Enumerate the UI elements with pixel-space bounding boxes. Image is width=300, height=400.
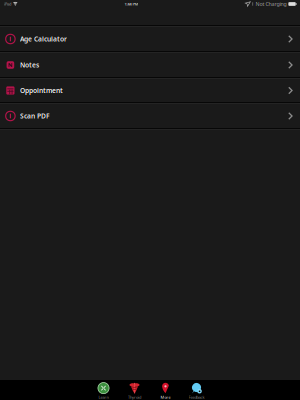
staticText: 1:44 PM xyxy=(124,1,138,7)
button[interactable]: Thyroid xyxy=(119,380,150,400)
button[interactable]: More xyxy=(150,380,181,400)
staticText: More xyxy=(160,394,170,400)
button[interactable]: Age Calculator xyxy=(0,27,300,53)
staticText: Learn xyxy=(98,394,108,400)
button[interactable]: Notes xyxy=(0,53,300,79)
button[interactable]: Feedback xyxy=(181,380,212,400)
staticText: iPad xyxy=(4,1,11,7)
button[interactable]: Oppointment xyxy=(0,79,300,104)
staticText: Notes xyxy=(20,61,39,69)
staticText: Feedback xyxy=(188,394,204,400)
button[interactable]: Learn xyxy=(88,380,119,400)
staticText: Thyroid xyxy=(128,394,141,400)
button[interactable]: Scan PDF xyxy=(0,104,300,130)
staticText: Age Calculator xyxy=(20,35,67,43)
staticText: Scan PDF xyxy=(20,112,50,120)
staticText: Not Charging xyxy=(255,0,286,8)
staticText: Oppointment xyxy=(20,86,63,95)
